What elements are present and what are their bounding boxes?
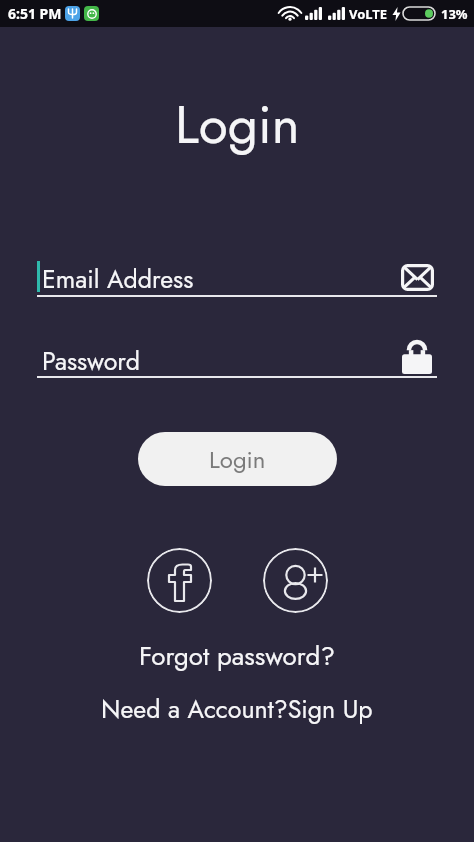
staticText: Password [42,343,141,377]
staticText: 13% [441,5,468,23]
staticText: Need a Account?Sign Up [101,691,373,727]
staticText: Login [175,86,300,163]
button[interactable]: Need a Account?Sign Up [101,691,373,727]
button[interactable] [263,548,328,613]
button[interactable] [147,548,212,613]
staticText: Email Address [42,261,194,295]
staticText: Forgot password? [139,637,335,675]
staticText: VoLTE [349,5,388,23]
button[interactable]: Forgot password? [139,637,335,675]
button[interactable]: Login [138,432,337,486]
staticText: 6:51 PM [8,4,62,23]
staticText: Login [209,442,266,477]
